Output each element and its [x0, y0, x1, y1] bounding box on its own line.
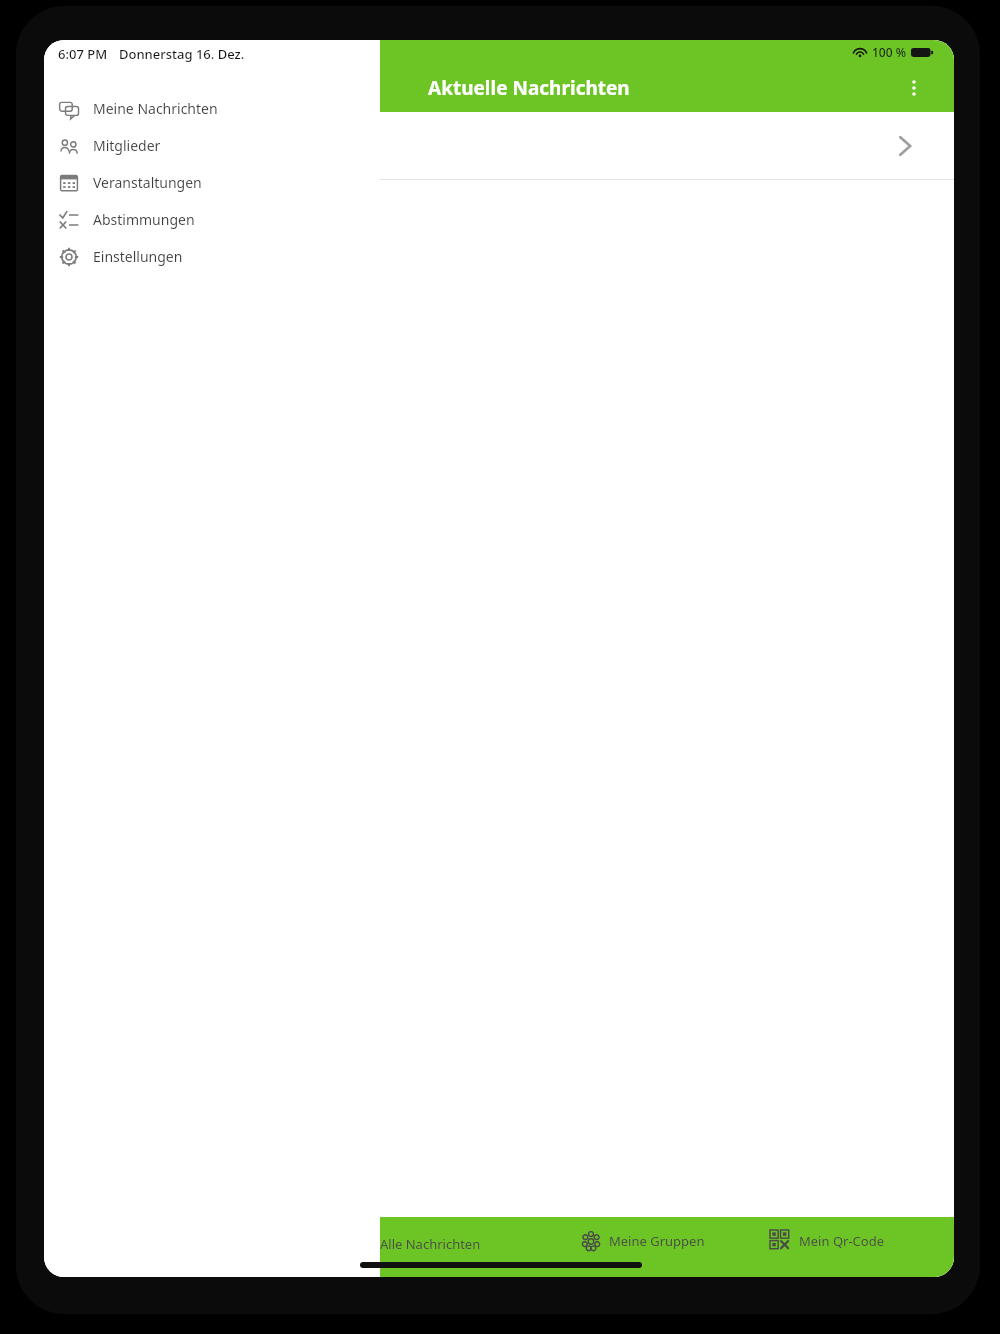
staticText: Einstellungen [93, 247, 183, 266]
staticText: Meine Gruppen [609, 1232, 705, 1250]
staticText: 6:07 PM [58, 45, 108, 63]
button[interactable]: Alle Nachrichten [380, 1217, 574, 1277]
button[interactable]: Einstellungen [44, 238, 380, 275]
button[interactable]: Mitglieder [44, 127, 380, 164]
staticText: Aktuelle Nachrichten [428, 75, 630, 101]
staticText: Alle Nachrichten [380, 1235, 481, 1253]
staticText: 100 % [872, 44, 906, 60]
staticText: Meine Nachrichten [93, 99, 218, 118]
staticText: Mitglieder [93, 136, 161, 155]
button[interactable]: Meine Nachrichten [44, 90, 380, 127]
button[interactable] [380, 112, 954, 180]
button[interactable]: More options [892, 66, 936, 110]
staticText: Mein Qr-Code [799, 1232, 885, 1250]
button[interactable]: Meine Gruppen [574, 1217, 764, 1277]
staticText: Donnerstag 16. Dez. [119, 45, 245, 63]
staticText: Abstimmungen [93, 210, 195, 229]
button[interactable]: Veranstaltungen [44, 164, 380, 201]
button[interactable]: Mein Qr-Code [764, 1217, 954, 1277]
staticText: Veranstaltungen [93, 173, 202, 192]
button[interactable]: Abstimmungen [44, 201, 380, 238]
